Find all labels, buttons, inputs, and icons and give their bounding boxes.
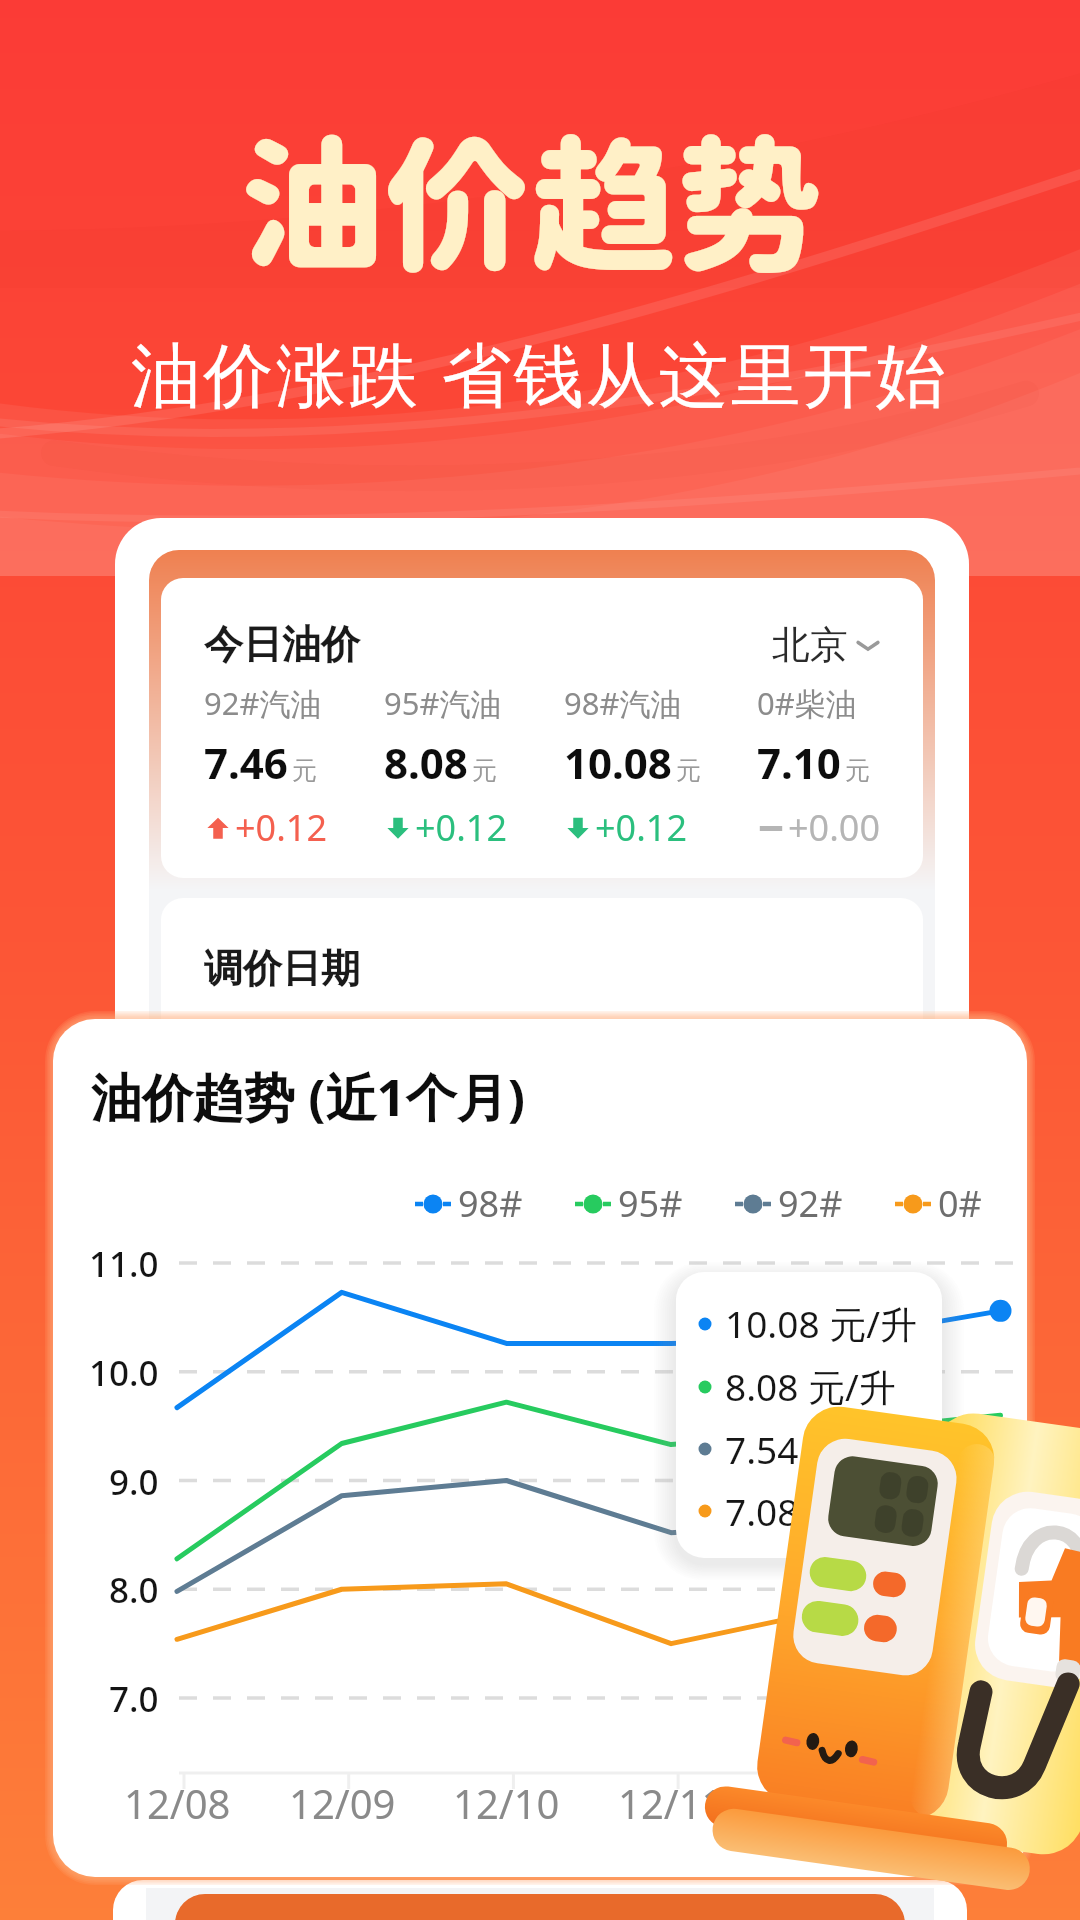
button[interactable]: 98#汽油 [564,682,701,852]
staticText: 95#汽油 [384,682,502,724]
button[interactable]: 95#汽油 [384,682,508,852]
staticText: 元 [676,755,701,786]
staticText: 北京 [772,621,848,669]
staticText: +0.12 [235,803,328,852]
staticText: 12/11 [618,1776,725,1830]
staticText: +0.12 [415,803,508,852]
staticText: 92# [778,1179,843,1228]
staticText: +0.00 [788,803,881,852]
staticText: 10.08 [564,734,672,791]
staticText: 10.0 [89,1349,159,1397]
staticText: 0#柴油 [757,682,857,724]
other: Gas pump illustration [667,1355,1080,1905]
staticText: 7.46 [204,734,288,791]
staticText: 元 [472,755,497,786]
staticText: 元 [292,755,317,786]
staticText: 7.0 [109,1675,159,1723]
button[interactable]: 92#汽油 [204,682,328,852]
button[interactable]: 0#柴油 [757,682,881,852]
staticText: 8.08 元/升 [725,1361,896,1412]
staticText: 12/10 [453,1776,560,1830]
staticText: 12/08 [124,1776,231,1830]
staticText: 0# [938,1179,982,1228]
staticText: 95# [618,1179,683,1228]
staticText: 8.08 [384,734,468,791]
staticText: 7.10 [757,734,841,791]
staticText: 油价涨跌 省钱从这里开始 [131,325,949,421]
staticText: 92#汽油 [204,682,322,724]
staticText: 12/09 [289,1776,396,1830]
staticText: 7.08 [725,1486,799,1536]
staticText: 油价趋势 [238,117,822,289]
staticText: 今日油价 [204,620,360,669]
staticText: 元 [845,755,870,786]
staticText: +0.12 [595,803,688,852]
staticText: 7.54 [725,1424,799,1474]
staticText: 12/12 [783,1776,890,1830]
staticText: 调价日期 [204,944,360,988]
staticText: 98# [458,1179,523,1228]
staticText: 9.0 [109,1458,159,1506]
staticText: 10.08 元/升 [725,1298,917,1349]
staticText: 8.0 [109,1566,159,1614]
staticText: 98#汽油 [564,682,682,724]
staticText: 11.0 [89,1240,159,1288]
staticText: 油价趋势 (近1个月) [91,1061,526,1131]
button[interactable]: 北京 [772,621,881,669]
staticText: 12/13 [948,1776,1027,1830]
